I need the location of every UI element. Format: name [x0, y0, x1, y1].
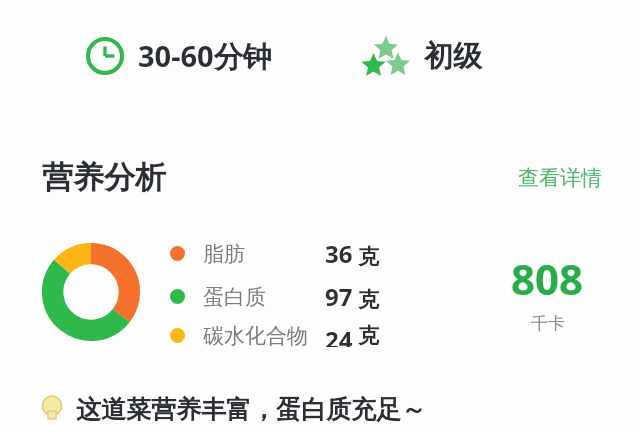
- staticText: 脂肪: [203, 241, 245, 267]
- staticText: 蛋白质: [203, 284, 266, 310]
- staticText: 24: [325, 323, 353, 347]
- button[interactable]: 查看详情: [514, 159, 606, 197]
- staticText: 克: [358, 244, 379, 270]
- staticText: 营养分析: [42, 158, 166, 197]
- button[interactable]: Cooking time: [84, 34, 274, 78]
- staticText: 36: [325, 237, 353, 270]
- staticText: 初级: [424, 38, 482, 75]
- staticText: 这道菜营养丰富，蛋白质充足～: [76, 394, 426, 425]
- staticText: 千卡: [531, 313, 565, 334]
- staticText: 碳水化合物: [203, 323, 308, 347]
- staticText: 查看详情: [518, 165, 602, 191]
- other: Cooking time: [86, 37, 124, 75]
- staticText: 97: [325, 280, 353, 313]
- staticText: 克: [358, 287, 379, 313]
- button[interactable]: 蛋白质: [170, 279, 379, 314]
- staticText: 808: [511, 250, 584, 307]
- staticText: 30-60分钟: [138, 36, 272, 76]
- button[interactable]: Difficulty level: [358, 32, 484, 80]
- staticText: 克: [358, 323, 379, 347]
- button[interactable]: 脂肪: [170, 236, 379, 271]
- other: Nutrition chart: [42, 243, 140, 341]
- button[interactable]: 碳水化合物: [170, 322, 379, 348]
- other: Tip: [40, 395, 64, 425]
- other: Difficulty level: [360, 34, 412, 78]
